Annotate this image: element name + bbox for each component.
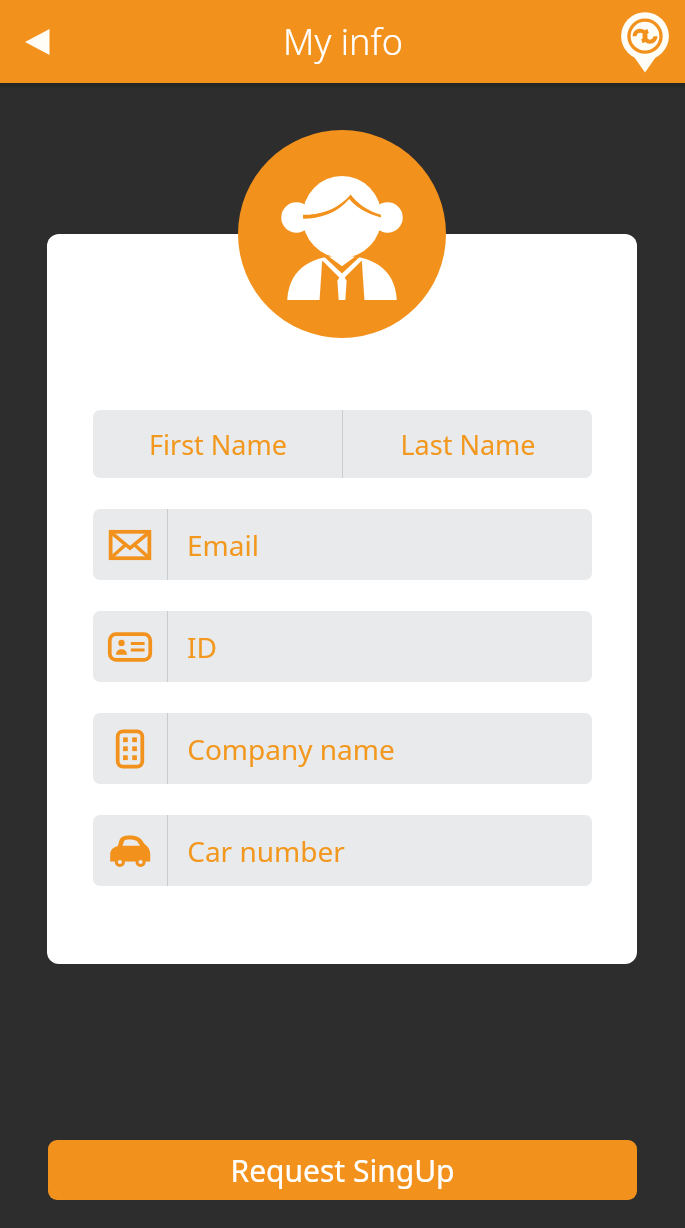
- button[interactable]: Last Name: [343, 410, 592, 478]
- button[interactable]: Location: [613, 10, 677, 74]
- button[interactable]: Car number: [93, 815, 592, 886]
- staticText: My info: [283, 17, 403, 66]
- button[interactable]: Company name: [93, 713, 592, 784]
- button[interactable]: Back: [8, 10, 72, 74]
- staticText: Company name: [187, 730, 395, 768]
- staticText: Car number: [187, 832, 345, 870]
- staticText: First Name: [149, 426, 287, 463]
- button[interactable]: Request SingUp: [48, 1140, 637, 1200]
- button[interactable]: ID: [93, 611, 592, 682]
- staticText: Request SingUp: [230, 1150, 455, 1191]
- staticText: Last Name: [400, 426, 536, 463]
- button[interactable]: Profile photo: [238, 130, 446, 338]
- button[interactable]: Email: [93, 509, 592, 580]
- staticText: Email: [187, 526, 259, 564]
- button[interactable]: First Name: [93, 410, 342, 478]
- staticText: ID: [187, 628, 217, 666]
